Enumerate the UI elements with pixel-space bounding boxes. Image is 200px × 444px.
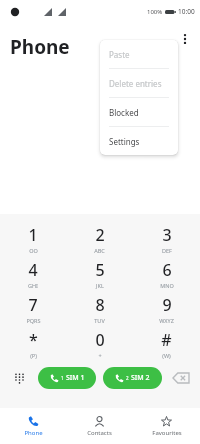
button[interactable]: 7 [0,291,66,326]
button[interactable]: Dialpad [0,365,38,391]
staticText: # [161,329,172,351]
staticText: Delete entries [109,78,162,89]
staticText: 9 [162,294,172,316]
button[interactable]: 2 [66,221,133,256]
button[interactable]: 0 [66,326,133,361]
button[interactable]: Delete entries [100,69,178,97]
staticText: 8 [95,294,105,316]
button[interactable]: 8 [66,291,133,326]
staticText: SIM 1 [66,373,85,383]
staticText: Phone [24,429,43,437]
staticText: JKL [96,282,104,289]
staticText: 5 [95,259,105,281]
staticText: Favourites [152,429,182,437]
staticText: Paste [109,49,130,60]
staticText: Phone [10,34,70,60]
staticText: (P) [30,352,37,359]
button[interactable]: 1 [38,367,96,389]
button[interactable]: 2 [103,367,162,389]
button[interactable]: # [133,326,200,361]
staticText: 3 [162,224,172,246]
staticText: Blocked [109,107,139,118]
staticText: 1 [61,375,64,381]
staticText: OO [29,247,38,254]
staticText: 2 [95,224,105,246]
staticText: 7 [28,294,38,316]
button[interactable]: More options [174,28,196,50]
staticText: GHI [28,282,38,289]
staticText: TUV [94,317,105,324]
button[interactable]: Backspace [162,365,200,391]
staticText: ABC [94,247,105,254]
button[interactable]: Contacts [66,408,133,444]
staticText: WXYZ [159,317,174,324]
button[interactable]: Paste [100,40,178,68]
staticText: 4 [28,259,38,281]
button[interactable]: Settings [100,127,178,155]
staticText: 0 [95,329,105,351]
staticText: PQRS [26,317,41,324]
button[interactable]: Favourites [133,408,200,444]
button[interactable]: 4 [0,256,66,291]
staticText: Settings [109,136,140,147]
staticText: 10:00 [178,7,195,16]
button[interactable]: 6 [133,256,200,291]
staticText: 2 [126,375,129,381]
button[interactable]: 1 [0,221,66,256]
staticText: 1 [28,224,38,246]
staticText: * [29,329,38,351]
button[interactable]: 5 [66,256,133,291]
button[interactable]: Blocked [100,98,178,126]
staticText: SIM 2 [131,373,150,383]
staticText: MNO [160,282,174,289]
staticText: + [98,352,102,359]
button[interactable]: * [0,326,66,361]
staticText: 6 [162,259,172,281]
staticText: (W) [162,352,171,359]
button[interactable]: Phone [0,408,66,444]
staticText: Contacts [87,429,112,437]
button[interactable]: 3 [133,221,200,256]
button[interactable]: 9 [133,291,200,326]
staticText: DEF [162,247,172,254]
staticText: 100% [147,8,163,16]
